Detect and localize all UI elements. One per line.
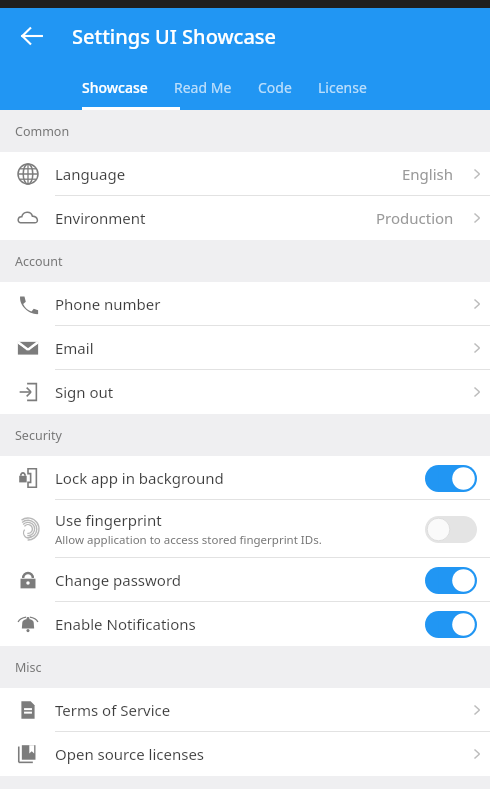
staticText: Code: [258, 78, 292, 97]
staticText: Misc: [15, 659, 42, 676]
button[interactable]: Lock app in background: [0, 456, 490, 500]
button[interactable]: Read Me: [174, 70, 232, 105]
staticText: Settings UI Showcase: [72, 23, 277, 50]
staticText: Language: [55, 164, 402, 184]
staticText: License: [318, 78, 367, 97]
button[interactable]: Sign out: [0, 370, 490, 414]
staticText: Production: [376, 208, 454, 228]
staticText: Enable Notifications: [55, 614, 196, 634]
button[interactable]: License: [318, 70, 367, 105]
staticText: Account: [15, 253, 63, 270]
staticText: Lock app in background: [55, 468, 224, 488]
button[interactable]: Terms of Service: [0, 688, 490, 732]
button[interactable]: Code: [258, 70, 292, 105]
button[interactable]: Open source licenses: [0, 732, 490, 776]
button[interactable]: Phone number: [0, 282, 490, 326]
button[interactable]: Change password: [0, 558, 490, 602]
button[interactable]: Showcase: [82, 70, 148, 105]
button[interactable]: Email: [0, 326, 490, 370]
staticText: Security: [15, 427, 62, 444]
button[interactable]: Back: [10, 14, 54, 58]
staticText: Common: [15, 123, 70, 140]
staticText: Environment: [55, 208, 376, 228]
staticText: Use fingerprint: [55, 510, 162, 530]
staticText: Sign out: [55, 382, 464, 402]
staticText: Email: [55, 338, 464, 358]
staticText: Allow application to access stored finge…: [55, 532, 322, 548]
staticText: Phone number: [55, 294, 464, 314]
staticText: Read Me: [174, 78, 232, 97]
button[interactable]: Language: [0, 152, 490, 196]
staticText: English: [402, 164, 454, 184]
staticText: Showcase: [82, 78, 148, 97]
staticText: Terms of Service: [55, 700, 464, 720]
button[interactable]: Use fingerprint: [0, 500, 490, 558]
button[interactable]: Environment: [0, 196, 490, 240]
button[interactable]: Enable Notifications: [0, 602, 490, 646]
staticText: Change password: [55, 570, 182, 590]
staticText: Open source licenses: [55, 744, 464, 764]
